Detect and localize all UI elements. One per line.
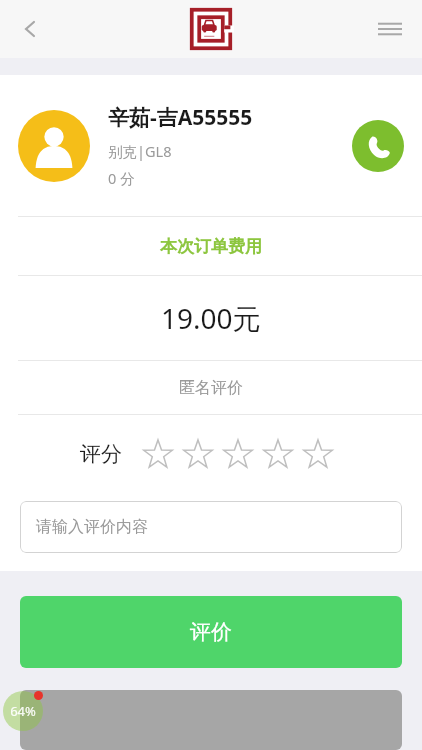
staticText: 匿名评价: [179, 378, 243, 398]
button[interactable]: Rate 5 stars: [298, 434, 338, 474]
button[interactable]: 辛茹-吉A55555: [0, 75, 422, 216]
staticText: 19.00元: [161, 299, 261, 337]
button[interactable]: Battery 64 percent: [3, 691, 43, 731]
staticText: 请输入评价内容: [36, 517, 148, 537]
staticText: 本次订单费用: [160, 236, 262, 257]
button[interactable]: Rate 1 stars: [138, 434, 178, 474]
button[interactable]: 匿名评价: [0, 361, 422, 414]
staticText: 64%: [10, 702, 36, 720]
button[interactable]: Back: [8, 7, 52, 51]
button[interactable]: Rate 3 stars: [218, 434, 258, 474]
staticText: 别克|GL8: [108, 141, 172, 161]
button[interactable]: Rate 4 stars: [258, 434, 298, 474]
button[interactable]: Menu: [368, 7, 412, 51]
button[interactable]: Logo: [188, 6, 234, 52]
button[interactable]: Rate 2 stars: [178, 434, 218, 474]
staticText: 辛茹-吉A55555: [108, 103, 253, 132]
button[interactable]: 请输入评价内容: [20, 501, 402, 553]
button[interactable]: [20, 690, 402, 750]
button[interactable]: 评价: [20, 596, 402, 668]
button[interactable]: Call driver: [352, 120, 404, 172]
staticText: 0 分: [108, 168, 135, 188]
staticText: 评分: [80, 441, 122, 467]
staticText: 评价: [190, 619, 232, 645]
